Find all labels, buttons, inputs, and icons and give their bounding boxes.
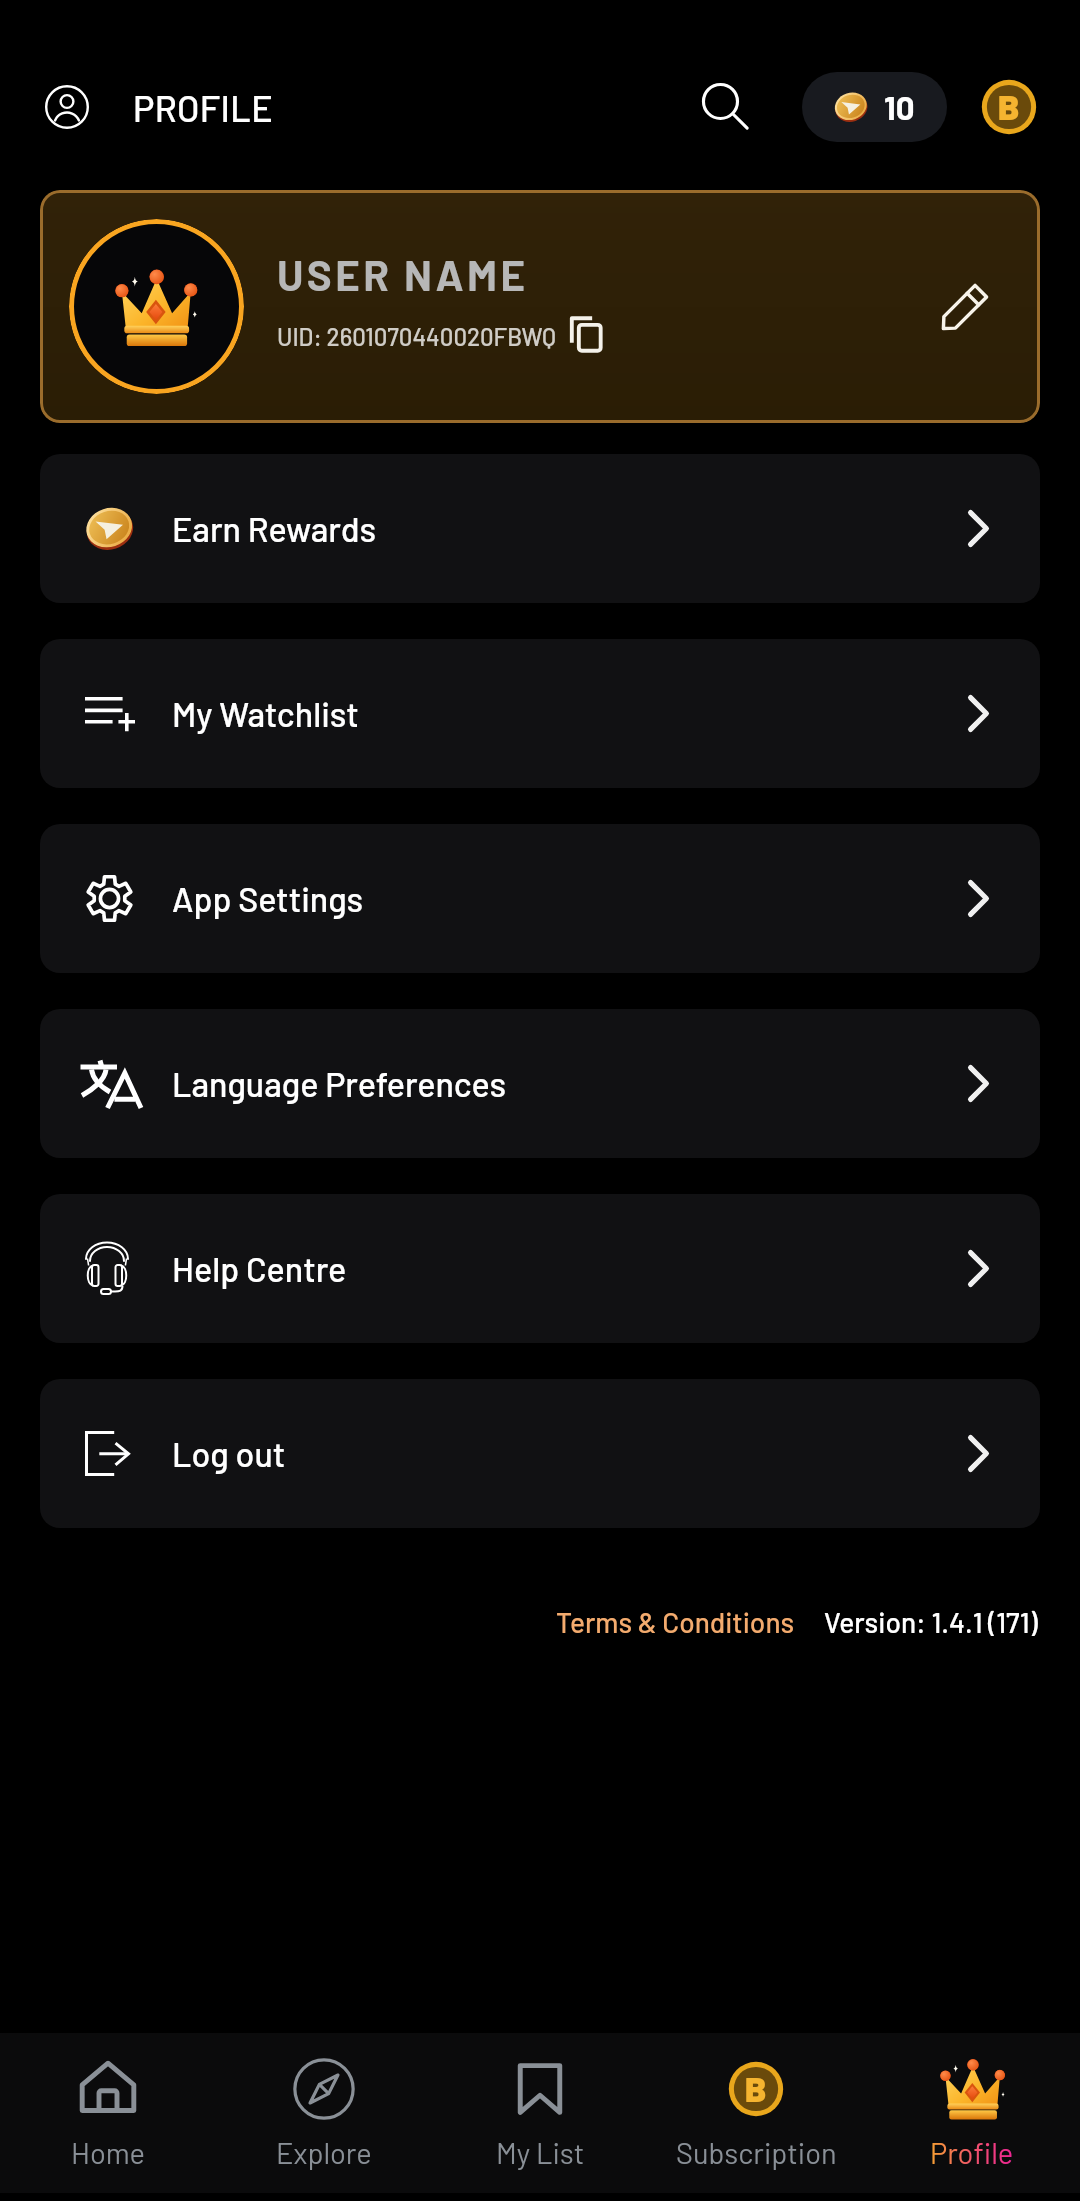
button[interactable]: App Settings xyxy=(40,824,1040,973)
button[interactable]: B xyxy=(648,2033,864,2193)
button[interactable]: Profile xyxy=(864,2033,1080,2193)
button[interactable]: Help Centre xyxy=(40,1194,1040,1343)
staticText: Log out xyxy=(172,1433,286,1474)
button[interactable]: USER NAME xyxy=(40,190,1040,423)
button[interactable]: Search xyxy=(702,83,750,131)
staticText: Terms & Conditions xyxy=(556,1605,795,1639)
button[interactable]: Account xyxy=(44,84,90,130)
staticText: UID: 2601070440020FBWQ xyxy=(277,322,556,351)
staticText: Version: 1.4.1 (171) xyxy=(824,1605,1038,1639)
button[interactable]: 10 xyxy=(802,72,947,142)
staticText: 10 xyxy=(884,87,915,127)
button[interactable]: Log out xyxy=(40,1379,1040,1528)
button[interactable]: Subscription xyxy=(980,78,1038,136)
staticText: B xyxy=(998,85,1020,127)
button[interactable]: My Watchlist xyxy=(40,639,1040,788)
staticText: PROFILE xyxy=(133,86,274,129)
button[interactable]: Home xyxy=(0,2033,216,2193)
staticText: Help Centre xyxy=(172,1248,347,1289)
staticText: Profile xyxy=(930,2135,1014,2170)
button[interactable]: Explore xyxy=(216,2033,432,2193)
button[interactable]: Terms & Conditions xyxy=(556,1605,795,1639)
button[interactable]: Earn Rewards xyxy=(40,454,1040,603)
staticText: My List xyxy=(496,2135,585,2170)
button[interactable]: Edit profile xyxy=(937,279,993,335)
staticText: Home xyxy=(71,2135,146,2170)
staticText: B xyxy=(745,2067,767,2109)
staticText: Explore xyxy=(276,2135,372,2170)
staticText: Subscription xyxy=(676,2135,837,2170)
button[interactable]: Copy UID xyxy=(565,314,605,354)
button[interactable]: My List xyxy=(432,2033,648,2193)
staticText: Language Preferences xyxy=(172,1063,507,1104)
staticText: My Watchlist xyxy=(172,693,359,734)
staticText: USER NAME xyxy=(277,249,529,299)
staticText: Earn Rewards xyxy=(172,508,377,549)
button[interactable]: Language Preferences xyxy=(40,1009,1040,1158)
staticText: App Settings xyxy=(172,878,364,919)
